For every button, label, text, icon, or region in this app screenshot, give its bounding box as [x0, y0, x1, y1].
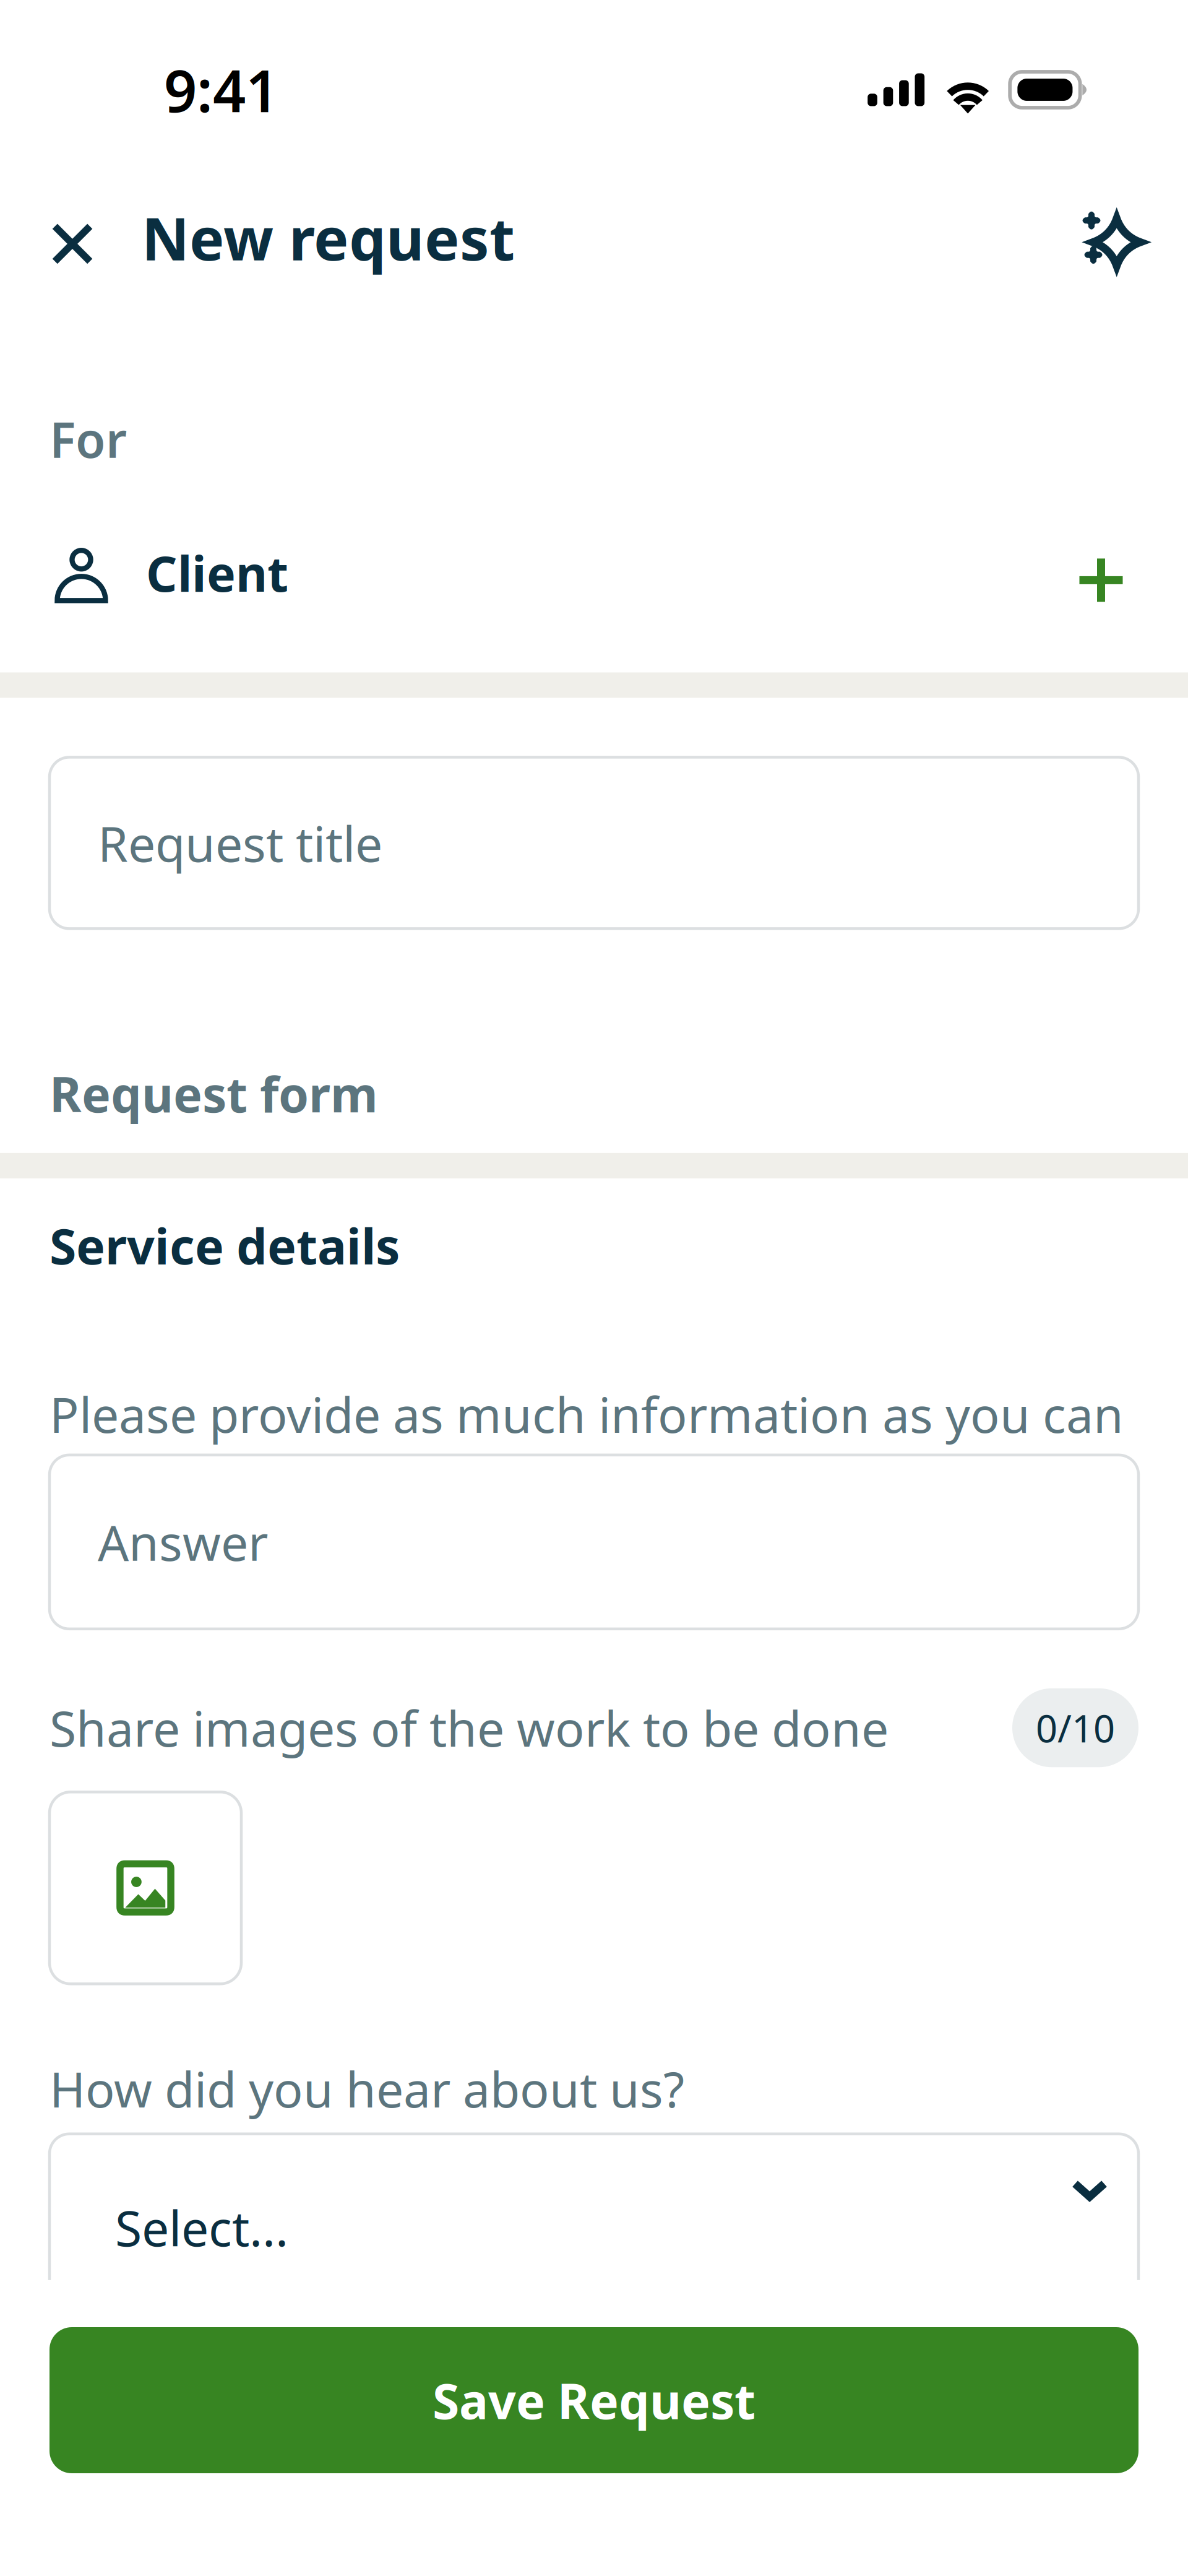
staticText: Please provide as much information as yo… — [49, 1382, 1124, 1446]
staticText: Select... — [115, 2195, 288, 2260]
staticText: Request form — [49, 1061, 378, 1126]
button[interactable]: Select... — [49, 2134, 1138, 2320]
button[interactable]: Close — [51, 199, 142, 277]
staticText: 0/10 — [1036, 1703, 1115, 1753]
staticText: Share images of the work to be done — [49, 1695, 889, 1760]
staticText: 9:41 — [164, 51, 278, 128]
staticText: Request title — [98, 811, 382, 875]
button[interactable]: AI assist — [1075, 201, 1140, 274]
button[interactable]: Client — [0, 533, 1188, 607]
button[interactable]: Save Request — [49, 2327, 1138, 2473]
staticText: How did you hear about us? — [49, 2056, 684, 2121]
staticText: Service details — [49, 1213, 400, 1278]
button[interactable]: Add image — [49, 1792, 241, 1984]
staticText: For — [49, 407, 127, 471]
staticText: Answer — [98, 1510, 268, 1574]
staticText: Save Request — [433, 2368, 755, 2433]
button[interactable]: Answer — [49, 1455, 1138, 1629]
staticText: New request — [142, 199, 515, 277]
staticText: Client — [146, 540, 288, 605]
button[interactable]: Request title — [49, 757, 1138, 929]
